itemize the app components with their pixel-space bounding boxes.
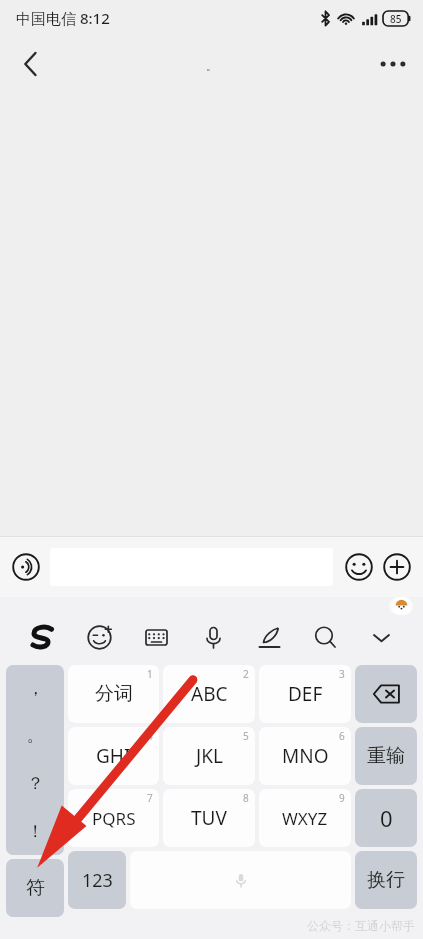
staticText: 123 (82, 868, 113, 893)
staticText: 7 (147, 791, 153, 805)
button[interactable]: ， (6, 665, 64, 855)
staticText: JKL (196, 743, 223, 769)
staticText: 85 (390, 12, 402, 26)
button[interactable]: Emoji panel (71, 615, 128, 659)
staticText: 重输 (367, 744, 405, 768)
button[interactable]: Hide keyboard (353, 615, 409, 659)
staticText: 换行 (367, 868, 405, 892)
staticText: 6 (339, 729, 345, 743)
staticText: 0 (380, 803, 393, 833)
staticText: 3 (339, 667, 345, 681)
button[interactable]: Back (8, 42, 52, 86)
staticText: ， (27, 678, 44, 699)
button[interactable]: Add (380, 550, 414, 584)
staticText: 公众号：互通小帮手 (307, 918, 415, 933)
button[interactable]: Mascot (389, 597, 413, 615)
staticText: 。 (206, 59, 217, 73)
button[interactable]: 符 (6, 859, 64, 917)
button[interactable]: 换行 (355, 851, 417, 909)
button[interactable]: TUV (163, 789, 255, 847)
button[interactable]: More options (371, 42, 415, 86)
staticText: 。 (27, 725, 44, 746)
button[interactable]: Sogou input (14, 615, 71, 659)
button[interactable]: Keyboard layout (128, 615, 185, 659)
button[interactable]: PQRS (68, 789, 159, 847)
button[interactable]: WXYZ (259, 789, 351, 847)
button[interactable]: Voice input (9, 550, 43, 584)
staticText: 8 (243, 791, 249, 805)
button[interactable]: MNO (259, 727, 351, 785)
button[interactable]: 0 (355, 789, 417, 847)
staticText: ABC (191, 681, 228, 707)
button[interactable]: Backspace (355, 665, 417, 723)
button[interactable]: 重输 (355, 727, 417, 785)
button[interactable]: GHI (68, 727, 159, 785)
staticText: TUV (191, 805, 227, 831)
staticText: WXYZ (282, 807, 328, 830)
staticText: 1 (147, 667, 153, 681)
staticText: 分词 (95, 682, 133, 706)
staticText: 5 (243, 729, 249, 743)
staticText: ！ (27, 821, 44, 842)
staticText: ？ (27, 773, 44, 794)
staticText: 符 (26, 876, 45, 900)
staticText: 中国电信 8:12 (16, 8, 110, 28)
button[interactable]: 123 (68, 851, 126, 909)
button[interactable]: Voice (185, 615, 241, 659)
button[interactable]: Emoji (342, 550, 376, 584)
staticText: 2 (243, 667, 249, 681)
staticText: GHI (96, 743, 131, 769)
staticText: 4 (147, 729, 153, 743)
button[interactable]: Handwriting (241, 615, 297, 659)
button[interactable]: JKL (163, 727, 255, 785)
staticText: DEF (288, 681, 323, 707)
button[interactable]: DEF (259, 665, 351, 723)
staticText: PQRS (92, 807, 136, 830)
button[interactable]: Search (297, 615, 353, 659)
button[interactable]: ABC (163, 665, 255, 723)
staticText: 9 (339, 791, 345, 805)
button[interactable]: 分词 (68, 665, 159, 723)
staticText: MNO (282, 743, 329, 769)
